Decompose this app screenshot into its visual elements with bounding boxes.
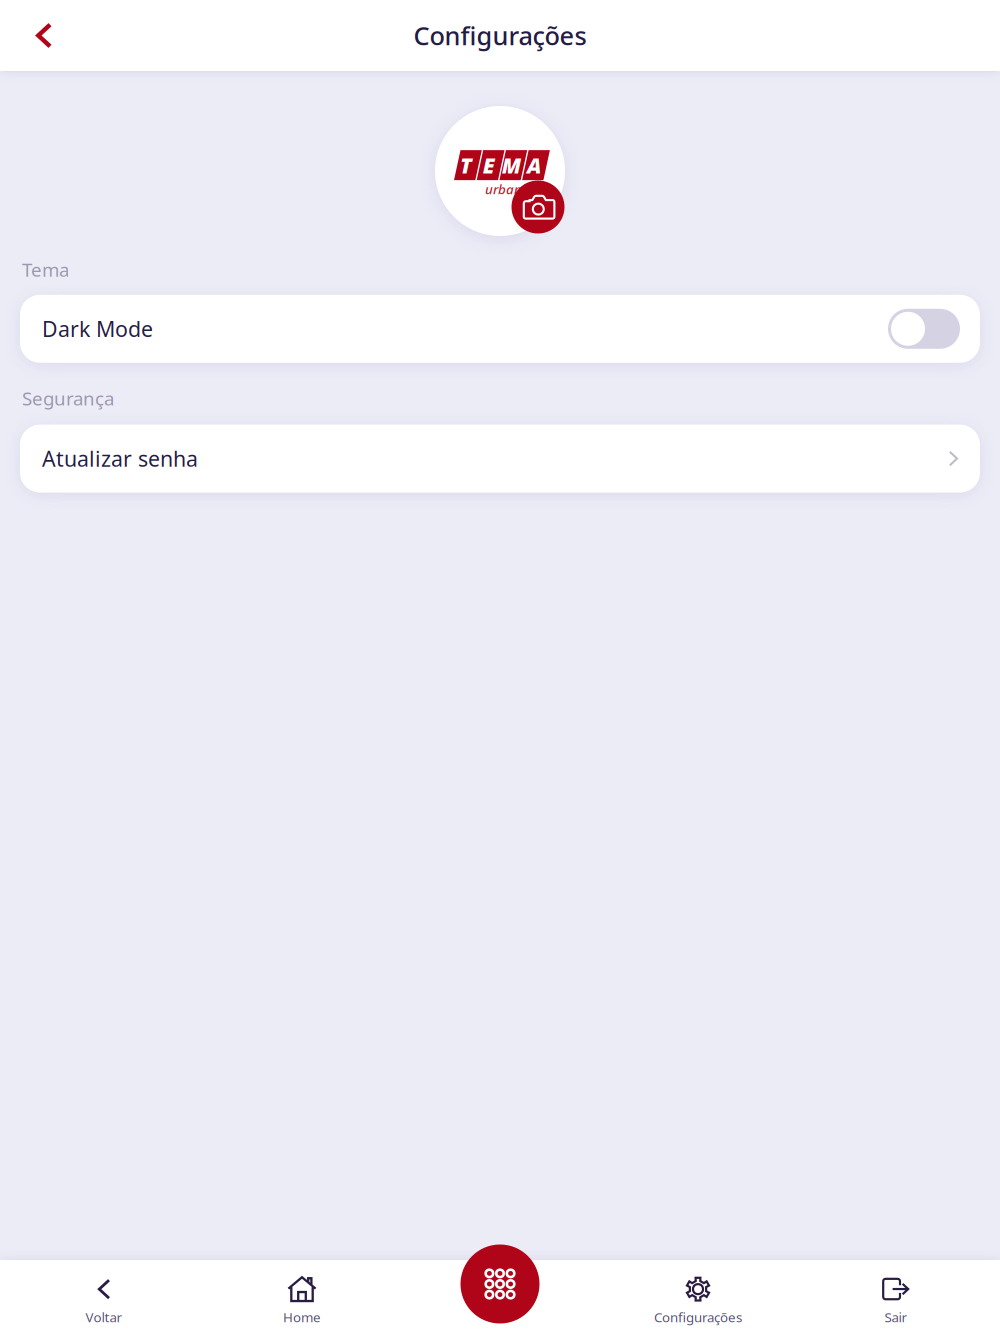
staticText: Segurança — [22, 386, 114, 411]
button[interactable]: Voltar — [5, 1260, 203, 1334]
staticText: Tema — [22, 257, 69, 282]
staticText: Home — [283, 1308, 321, 1326]
button[interactable]: Voltar — [0, 8, 81, 62]
staticText: Voltar — [85, 1308, 122, 1326]
button[interactable]: Home — [203, 1260, 401, 1334]
staticText: Sair — [884, 1308, 907, 1326]
staticText: Configurações — [413, 19, 586, 52]
staticText: E — [483, 151, 495, 179]
button[interactable]: Sair — [797, 1260, 995, 1334]
staticText: A — [527, 151, 541, 179]
staticText: Atualizar senha — [42, 444, 198, 473]
button[interactable]: Menu — [460, 1244, 539, 1323]
staticText: Dark Mode — [42, 315, 153, 343]
button[interactable]: Atualizar senha — [20, 425, 980, 493]
staticText: Configurações — [654, 1308, 742, 1326]
button[interactable]: Alterar foto — [511, 180, 564, 233]
staticText: M — [502, 151, 521, 179]
button[interactable]: Configurações — [599, 1260, 797, 1334]
button[interactable]: Dark Mode — [20, 295, 980, 363]
staticText: urbanismo — [485, 180, 552, 198]
staticText: T — [460, 151, 472, 179]
